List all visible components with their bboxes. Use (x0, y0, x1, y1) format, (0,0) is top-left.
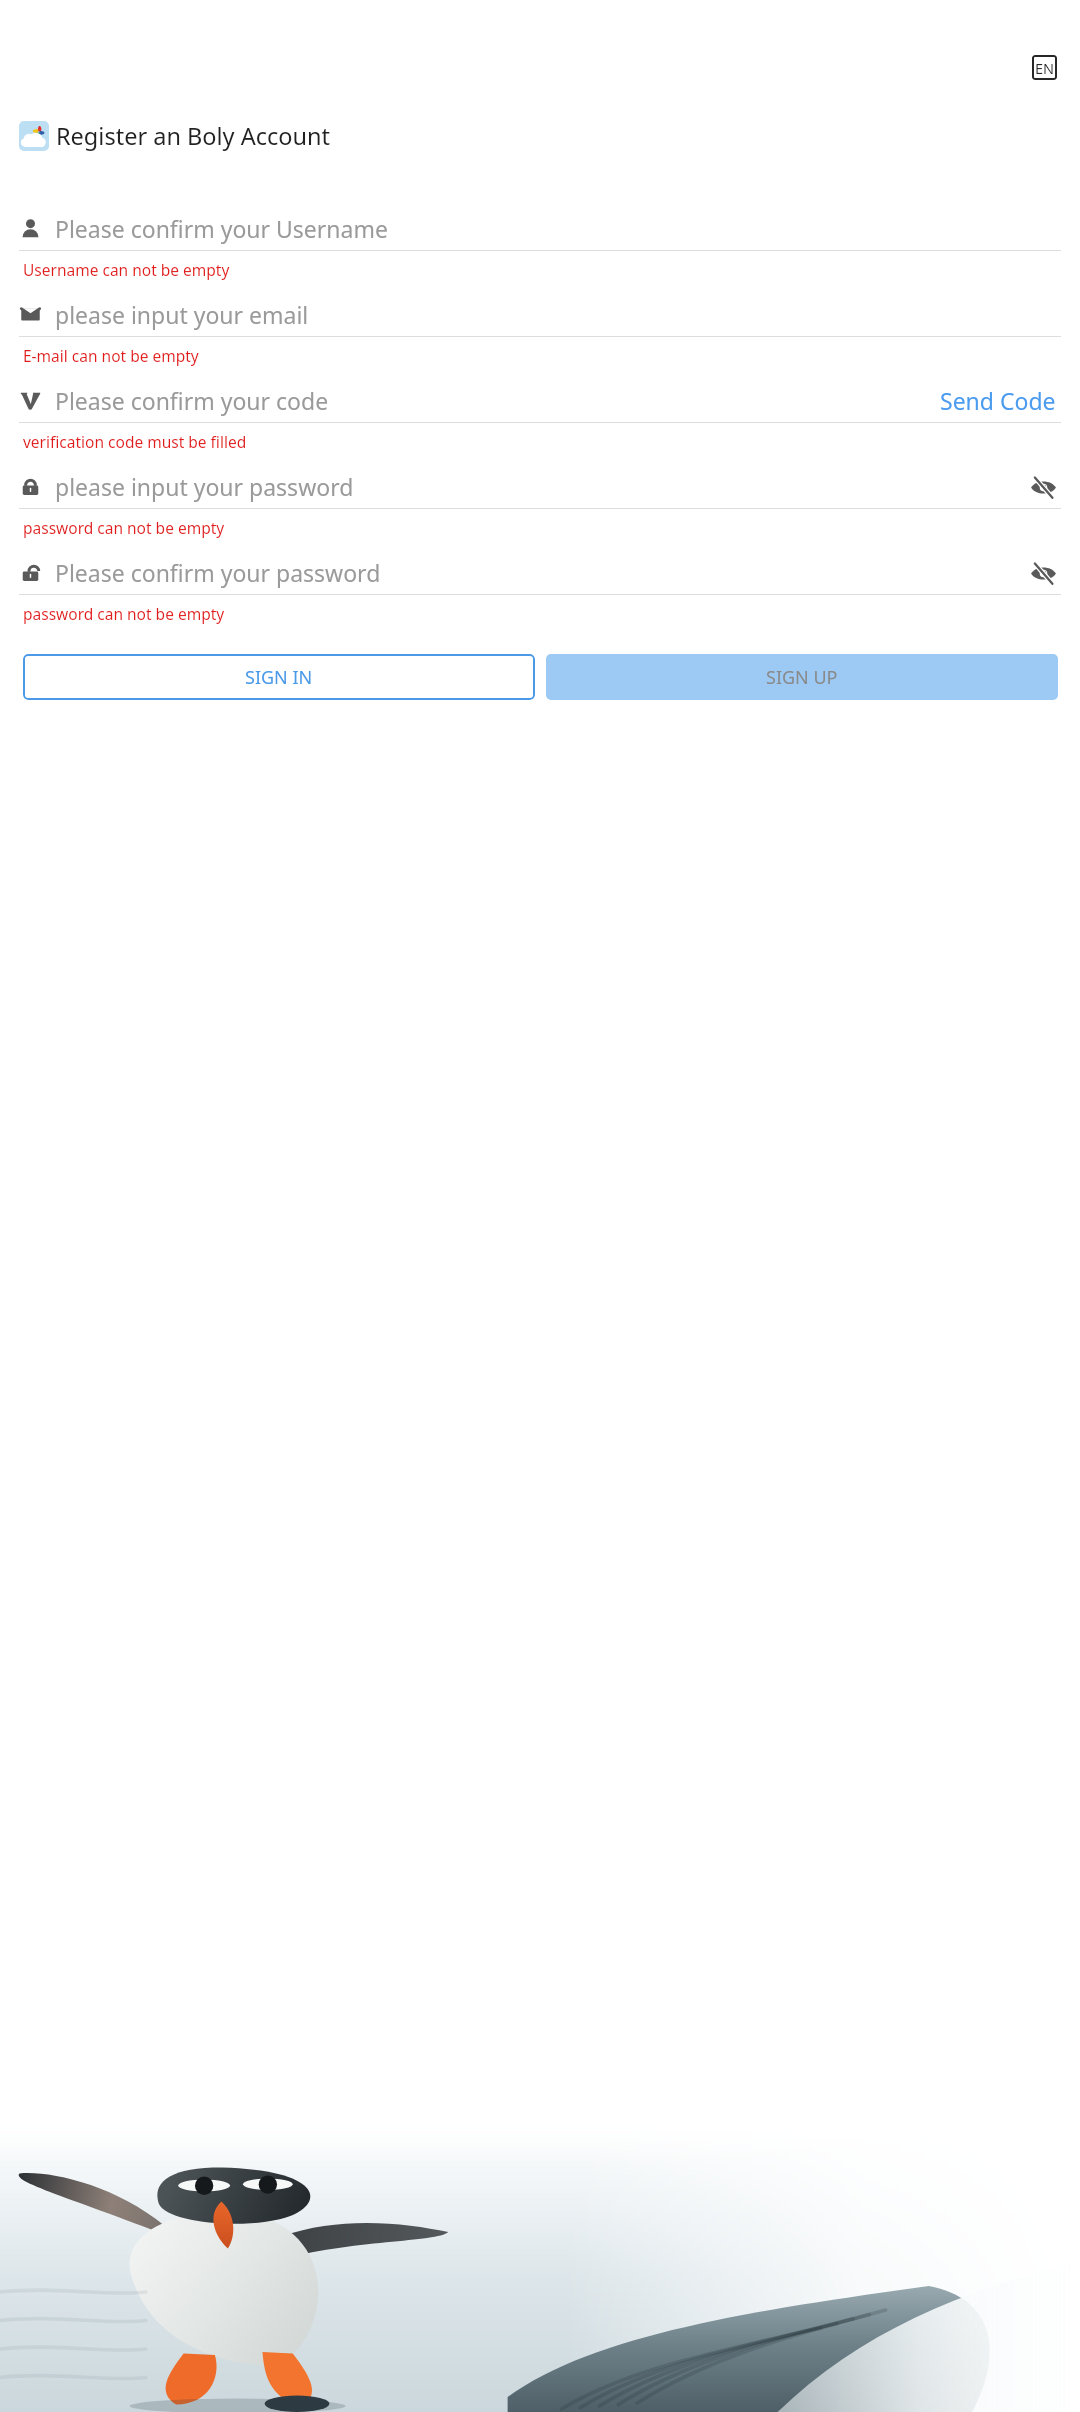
staticText: please input your password (55, 471, 354, 502)
other: Username (20, 218, 41, 239)
button[interactable]: Send Code (936, 383, 1060, 418)
staticText: SIGN IN (245, 665, 313, 690)
button[interactable]: Username (12, 207, 1068, 293)
button[interactable]: Confirm password (12, 551, 1068, 637)
staticText: E-mail can not be empty (23, 345, 199, 366)
staticText: password can not be empty (23, 603, 225, 624)
button[interactable]: Show confirm password (1026, 556, 1060, 590)
button[interactable]: Change language, English (1032, 55, 1057, 80)
other: Verification code (20, 390, 41, 411)
button[interactable]: Verification code (12, 379, 1068, 465)
staticText: Register an Boly Account (56, 120, 330, 152)
button[interactable]: SIGN UP (546, 654, 1058, 700)
staticText: Send Code (940, 385, 1056, 416)
staticText: SIGN UP (766, 665, 838, 690)
staticText: Username can not be empty (23, 259, 230, 280)
other: Email (20, 304, 41, 325)
button[interactable]: SIGN IN (23, 654, 535, 700)
button[interactable]: Show password (1026, 470, 1060, 504)
button[interactable]: Email (12, 293, 1068, 379)
staticText: Please confirm your Username (55, 213, 388, 244)
staticText: please input your email (55, 299, 309, 330)
other: Password (20, 476, 41, 497)
staticText: EN (1035, 58, 1055, 78)
staticText: Please confirm your password (55, 557, 381, 588)
other: Confirm password (20, 562, 41, 583)
staticText: password can not be empty (23, 517, 225, 538)
staticText: Please confirm your code (55, 385, 329, 416)
button[interactable]: Password (12, 465, 1068, 551)
staticText: verification code must be filled (23, 431, 247, 452)
